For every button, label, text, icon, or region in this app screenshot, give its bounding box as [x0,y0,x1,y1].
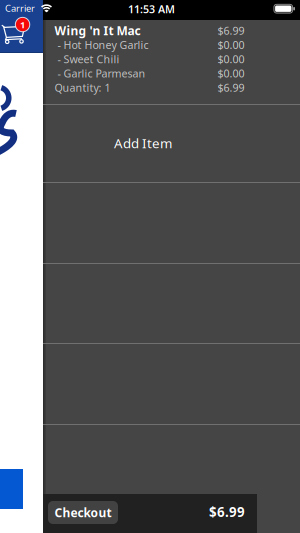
staticText: - Sweet Chili [57,52,119,66]
staticText: Add Item [114,134,172,152]
button[interactable]: Cart [0,20,43,53]
staticText: $0.00 [217,52,244,66]
staticText: 11:53 AM [128,2,175,16]
button[interactable]: Wing 'n It Mac [43,20,300,104]
staticText: $6.99 [217,80,244,95]
button[interactable]: Add Item [43,104,300,182]
staticText: Carrier [5,2,35,14]
staticText: 1 [20,18,25,31]
staticText: $0.00 [217,38,244,52]
staticText: - Hot Honey Garlic [57,38,148,52]
staticText: $6.99 [217,23,244,38]
staticText: Quantity: 1 [54,80,110,95]
staticText: $6.99 [209,503,245,521]
staticText: - Garlic Parmesan [57,66,145,80]
staticText: Wing 'n It Mac [54,23,140,38]
button[interactable]: Checkout [48,501,118,524]
staticText: Checkout [54,504,111,520]
staticText: $0.00 [217,66,244,80]
